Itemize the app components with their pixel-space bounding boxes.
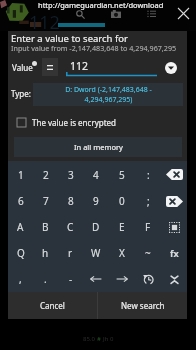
staticText: W	[91, 246, 101, 260]
button[interactable]: A	[8, 214, 33, 240]
staticText: 9	[93, 194, 99, 208]
staticText: fx	[170, 247, 179, 259]
button[interactable]: Select all	[161, 214, 187, 240]
button[interactable]: 4	[83, 161, 109, 188]
button[interactable]: History	[135, 266, 161, 292]
staticText: Type:	[11, 88, 31, 99]
button[interactable]: W	[83, 240, 109, 266]
staticText: 3	[68, 168, 74, 182]
staticText: 4	[93, 168, 99, 182]
button[interactable]: Info	[32, 61, 37, 66]
button[interactable]: Q	[8, 240, 33, 266]
staticText: Jh 0	[103, 335, 114, 343]
button[interactable]: 112	[66, 57, 157, 77]
staticText: #	[97, 335, 103, 343]
staticText: D: Dword (-2,147,483,648 - 4,294,967,295…	[65, 85, 152, 105]
button[interactable]: 6	[8, 188, 33, 214]
staticText: C	[67, 220, 74, 234]
staticText: 5	[119, 168, 125, 182]
staticText: h	[42, 246, 49, 260]
staticText: B	[42, 220, 49, 234]
staticText: 0	[119, 194, 125, 208]
button[interactable]: D	[83, 214, 109, 240]
button[interactable]: E	[109, 214, 135, 240]
staticText: http://gameguardian.net/download	[38, 0, 164, 10]
button[interactable]: Backspace	[161, 161, 187, 188]
staticText: F	[145, 220, 151, 234]
button[interactable]: Delete	[161, 188, 187, 214]
button[interactable]: In all memory	[14, 137, 182, 157]
staticText: 6	[18, 194, 24, 208]
staticText: -	[69, 272, 73, 286]
button[interactable]: 9	[83, 188, 109, 214]
button[interactable]: The value is encrypted	[14, 114, 134, 130]
staticText: A	[17, 220, 24, 234]
button[interactable]: F	[135, 214, 161, 240]
staticText: X	[119, 246, 125, 260]
staticText: 112	[29, 10, 60, 35]
button[interactable]: ;	[135, 188, 161, 214]
button[interactable]: :	[135, 161, 161, 188]
staticText: Enter a value to search for	[11, 32, 128, 45]
button[interactable]: 8	[58, 188, 83, 214]
button[interactable]: .	[33, 266, 58, 292]
button[interactable]: 0	[109, 188, 135, 214]
staticText: 7	[43, 194, 49, 208]
button[interactable]: 3	[58, 161, 83, 188]
button[interactable]: 7	[33, 188, 58, 214]
staticText: ;	[147, 194, 150, 208]
staticText: 8	[68, 194, 74, 208]
button[interactable]: Move right	[109, 266, 135, 292]
staticText: r	[68, 246, 73, 260]
button[interactable]: 5	[109, 161, 135, 188]
button[interactable]: 1	[8, 161, 33, 188]
staticText: The value is encrypted	[32, 117, 117, 128]
staticText: 85.0	[83, 335, 97, 343]
button[interactable]: Show options	[165, 62, 177, 74]
button[interactable]: h	[33, 240, 58, 266]
button[interactable]: New search	[98, 292, 187, 319]
button[interactable]: Hide keyboard	[161, 266, 187, 292]
button[interactable]: Functions	[161, 240, 187, 266]
staticText: 1	[18, 168, 24, 182]
staticText: Cancel	[40, 300, 65, 311]
button[interactable]: X	[109, 240, 135, 266]
staticText: ~	[145, 246, 151, 260]
staticText: Input value from -2,147,483,648 to 4,294…	[11, 43, 177, 53]
button[interactable]: Comparison operator	[42, 58, 58, 76]
button[interactable]: Move left	[83, 266, 109, 292]
button[interactable]: Cancel	[8, 292, 97, 319]
button[interactable]: ,	[8, 266, 33, 292]
staticText: New search	[121, 300, 165, 311]
staticText: .	[44, 272, 47, 286]
staticText: 112	[70, 59, 89, 73]
staticText: Value	[12, 62, 33, 73]
staticText: 2	[43, 168, 49, 182]
button[interactable]: B	[33, 214, 58, 240]
button[interactable]: ~	[135, 240, 161, 266]
staticText: In all memory	[74, 142, 123, 152]
button[interactable]: C	[58, 214, 83, 240]
staticText: D	[92, 220, 100, 234]
button[interactable]: r	[58, 240, 83, 266]
staticText: Q	[17, 246, 25, 260]
button[interactable]: -	[58, 266, 83, 292]
button[interactable]: 2	[33, 161, 58, 188]
staticText: ,	[19, 272, 22, 286]
staticText: :	[147, 168, 150, 182]
staticText: E	[119, 220, 125, 234]
button[interactable]: D: Dword (-2,147,483,648 - 4,294,967,295…	[33, 83, 183, 106]
